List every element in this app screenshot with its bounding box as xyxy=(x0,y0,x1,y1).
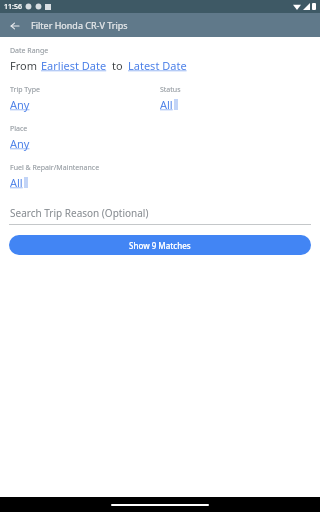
button[interactable]: Latest Date xyxy=(128,58,187,73)
button[interactable]: Show 9 Matches xyxy=(9,235,311,255)
staticText: Any xyxy=(10,97,30,112)
staticText: Earliest Date xyxy=(41,58,107,73)
staticText: From xyxy=(10,58,37,73)
staticText: Latest Date xyxy=(128,58,187,73)
staticText: Show 9 Matches xyxy=(129,240,191,251)
staticText: All xyxy=(160,97,173,112)
staticText: Fuel & Repair/Maintenance xyxy=(10,163,100,173)
staticText: to xyxy=(112,58,123,73)
button[interactable]: All xyxy=(10,175,28,190)
button[interactable]: Earliest Date xyxy=(41,58,107,73)
staticText: 11:56 xyxy=(4,2,22,12)
button[interactable]: All xyxy=(160,97,178,112)
staticText: Trip Type xyxy=(10,85,40,95)
staticText: All xyxy=(10,175,23,190)
button[interactable]: Back xyxy=(6,17,23,34)
staticText: Any xyxy=(10,136,30,151)
staticText: Date Range xyxy=(10,46,49,56)
staticText: Search Trip Reason (Optional) xyxy=(10,206,149,220)
staticText: Filter Honda CR-V Trips xyxy=(31,19,128,31)
staticText: Place xyxy=(10,124,28,134)
button[interactable]: Any xyxy=(10,97,30,112)
staticText: Status xyxy=(160,85,181,95)
button[interactable]: Search Trip Reason (Optional) xyxy=(0,206,320,225)
button[interactable]: Any xyxy=(10,136,30,151)
